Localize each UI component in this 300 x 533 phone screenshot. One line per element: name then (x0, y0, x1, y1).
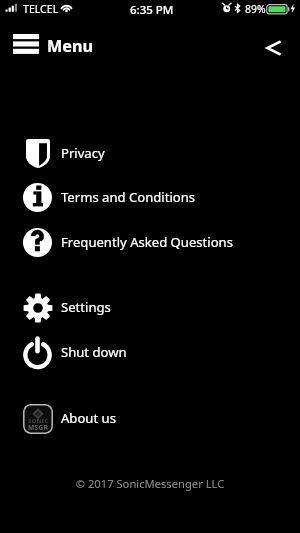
staticText: Menu (47, 35, 93, 57)
button[interactable]: Settings (0, 286, 300, 328)
button[interactable]: SONIC (0, 397, 300, 439)
button[interactable]: Frequently Asked Questions (0, 221, 300, 263)
staticText: About us (61, 409, 116, 427)
staticText: © 2017 SonicMessenger LLC (0, 476, 300, 491)
button[interactable]: Shut down (0, 331, 300, 373)
staticText: 6:35 PM (130, 2, 174, 18)
button[interactable]: Terms and Conditions (0, 176, 300, 218)
staticText: MSGR (28, 423, 49, 432)
staticText: Frequently Asked Questions (61, 233, 233, 251)
button[interactable]: Privacy (0, 132, 300, 174)
staticText: SONIC (28, 417, 49, 425)
button[interactable]: Back (258, 33, 288, 63)
button[interactable]: Menu (0, 23, 103, 65)
staticText: Privacy (61, 144, 105, 162)
staticText: Settings (61, 298, 111, 316)
staticText: TELCEL (23, 2, 59, 16)
staticText: Shut down (61, 343, 127, 361)
staticText: 89% (245, 2, 266, 16)
staticText: Terms and Conditions (61, 188, 196, 206)
